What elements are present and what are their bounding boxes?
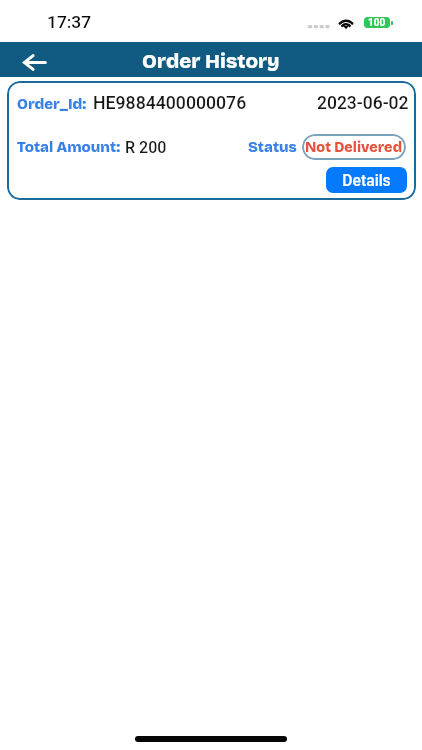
staticText: Total Amount: bbox=[17, 138, 121, 156]
staticText: HE9884400000076 bbox=[93, 93, 247, 114]
button[interactable]: Back bbox=[18, 47, 50, 77]
staticText: Not Delivered bbox=[305, 139, 403, 156]
button[interactable]: Details bbox=[326, 167, 407, 193]
staticText: 17:37 bbox=[47, 12, 92, 32]
staticText: Order_Id: bbox=[17, 95, 87, 113]
staticText: Details bbox=[342, 171, 391, 189]
staticText: Status bbox=[248, 138, 297, 156]
staticText: R 200 bbox=[125, 138, 167, 157]
staticText: 100 bbox=[368, 17, 386, 28]
staticText: 2023-06-02 bbox=[317, 93, 409, 114]
staticText: Order History bbox=[142, 49, 280, 74]
button[interactable]: Order_Id: bbox=[7, 81, 416, 200]
